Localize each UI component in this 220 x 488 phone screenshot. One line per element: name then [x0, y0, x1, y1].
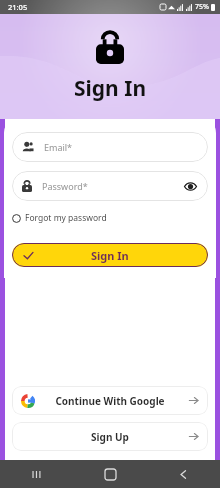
button[interactable]: Recent apps [26, 463, 48, 485]
staticText: Password* [42, 180, 88, 192]
staticText: Sign Up [91, 430, 129, 444]
button[interactable]: Back [172, 463, 194, 485]
button[interactable]: Continue With Google [12, 386, 208, 415]
button[interactable]: Show password [182, 178, 198, 194]
button[interactable]: Sign In [12, 243, 208, 267]
staticText: Forgot my password [25, 212, 107, 224]
button[interactable]: Password* [12, 171, 208, 201]
button[interactable]: Home [99, 463, 121, 485]
staticText: Sign In [91, 248, 129, 263]
button[interactable]: Forgot my password [12, 211, 107, 225]
staticText: Sign In [74, 74, 147, 103]
staticText: 75% [195, 2, 209, 12]
button[interactable]: Sign Up [12, 422, 208, 451]
button[interactable]: Email* [12, 132, 208, 162]
staticText: Email* [44, 141, 73, 153]
staticText: 21:05 [8, 2, 28, 12]
staticText: Continue With Google [55, 394, 165, 408]
